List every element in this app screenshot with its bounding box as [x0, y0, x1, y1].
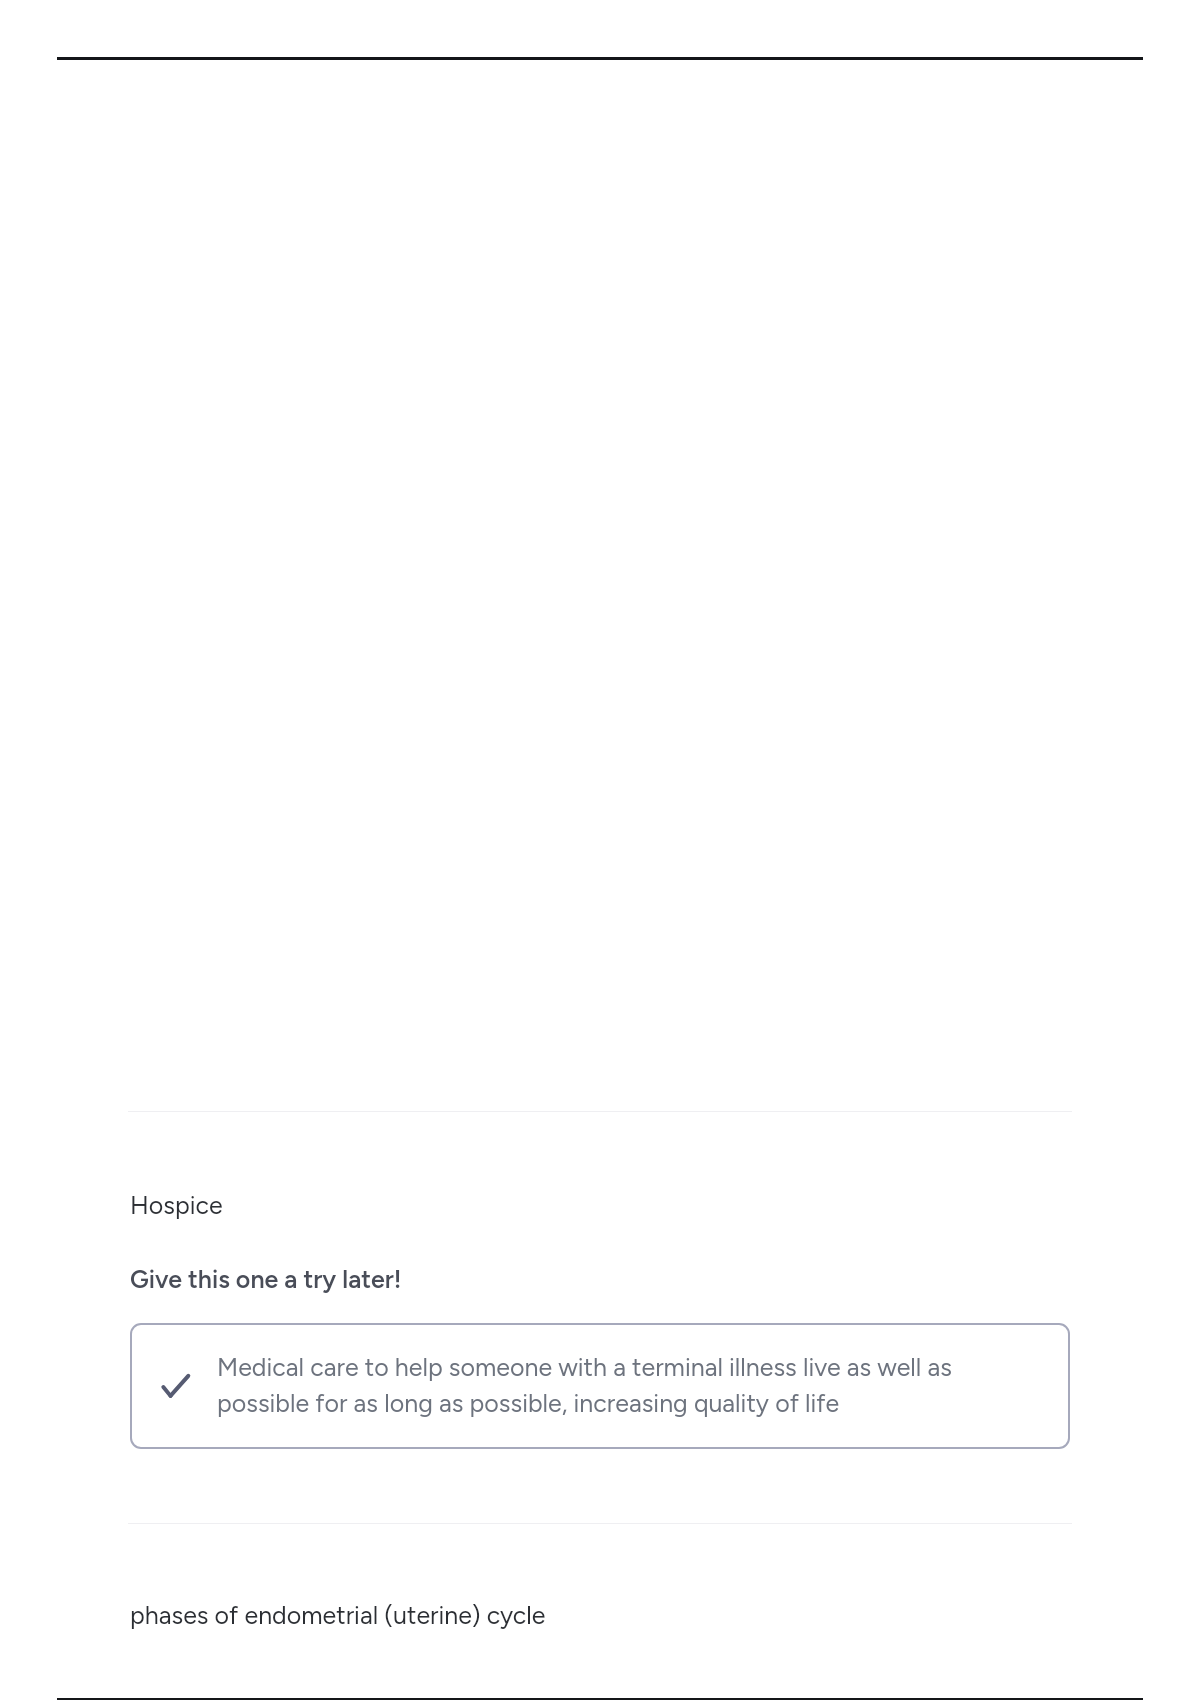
staticText: phases of endometrial (uterine) cycle — [130, 1600, 546, 1630]
other: Correct answer — [159, 1362, 203, 1406]
staticText: Give this one a try later! — [130, 1264, 402, 1294]
button[interactable]: phases of endometrial (uterine) cycle — [128, 1590, 1072, 1642]
button[interactable]: Hospice — [128, 1180, 1072, 1232]
button[interactable]: Correct answer — [130, 1323, 1070, 1449]
staticText: Medical care to help someone with a term… — [217, 1352, 977, 1418]
staticText: Hospice — [130, 1190, 223, 1220]
